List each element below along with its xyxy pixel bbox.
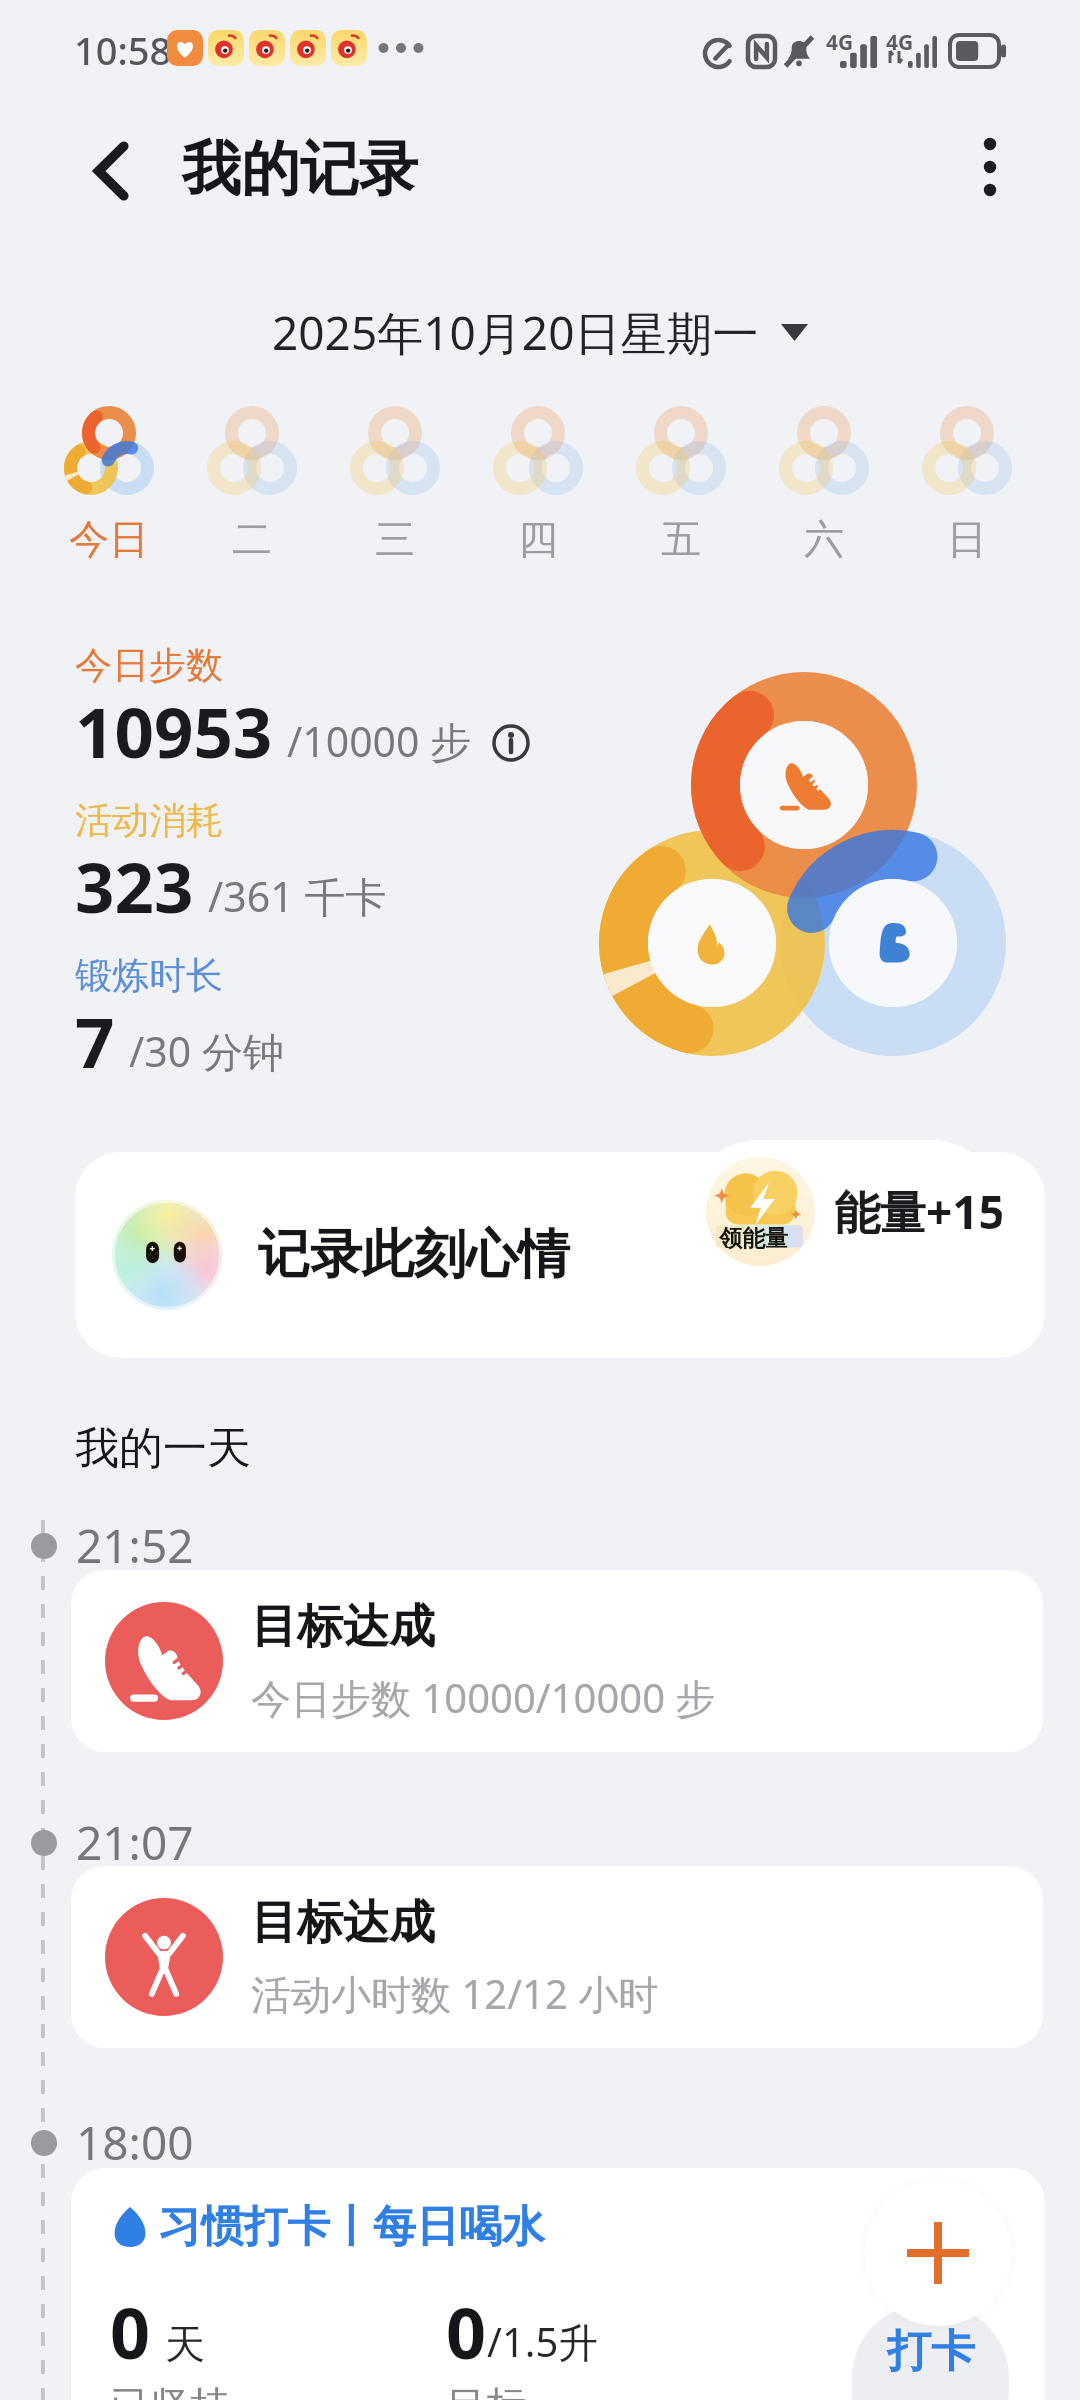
button[interactable]: More options [942,120,1038,216]
staticText: 0 [110,2284,151,2379]
staticText: 目标 [446,2381,526,2400]
staticText: 今日步数 10000/10000 步 [251,1670,716,1725]
staticText: 锻炼时长 [75,952,223,999]
button[interactable]: 打卡 [852,2304,1009,2400]
button[interactable]: Check in [865,2180,1011,2326]
staticText: 10953 [75,684,273,778]
staticText: 我的记录 [182,132,418,206]
staticText: /1.5升 [487,2314,599,2369]
staticText: 0 [446,2284,487,2379]
staticText: 目标达成 [251,1894,435,1952]
staticText: 四 [518,514,558,564]
button[interactable]: 日 [895,404,1038,564]
staticText: 10:58 [74,24,172,76]
staticText: 今日步数 [75,642,223,689]
button[interactable]: 目标达成 [71,1866,1043,2048]
button[interactable]: 二 [180,404,323,564]
staticText: 已坚持 [110,2381,230,2400]
button[interactable]: 领能量 [687,1140,1002,1282]
button[interactable]: 目标达成 [71,1570,1043,1752]
staticText: /10000 步 [287,713,472,769]
button[interactable] [71,2168,1045,2400]
button[interactable]: Info [492,724,530,762]
staticText: 六 [804,514,844,564]
staticText: 天 [165,2319,205,2369]
staticText: 18:00 [76,2111,194,2174]
button[interactable]: 五 [609,404,752,564]
button[interactable]: 今日 [37,404,180,564]
staticText: 活动消耗 [75,797,223,844]
staticText: 2025年10月20日星期一 [272,301,759,364]
staticText: 4G [826,28,854,57]
staticText: 今日 [69,514,149,564]
staticText: 记录此刻心情 [258,1222,570,1288]
staticText: 目标达成 [251,1598,435,1656]
staticText: 7 [75,994,115,1088]
staticText: 五 [661,514,701,564]
staticText: 21:07 [76,1811,194,1874]
button[interactable]: 三 [323,404,466,564]
staticText: 日 [947,514,987,564]
staticText: 我的一天 [75,1421,251,1476]
staticText: 习惯打卡丨每日喝水 [158,2200,545,2254]
button[interactable]: 记录此刻心情 [75,1152,1045,1358]
staticText: 4G [886,28,914,57]
button[interactable]: 2025年10月20日星期一 [272,301,808,364]
button[interactable]: 四 [466,404,609,564]
staticText: 打卡 [887,2324,975,2379]
staticText: 323 [75,839,194,933]
staticText: /361 千卡 [208,868,387,924]
staticText: 21:52 [76,1514,194,1577]
staticText: 能量+15 [834,1180,1002,1243]
staticText: 领能量 [719,1224,788,1253]
staticText: 活动小时数 12/12 小时 [251,1966,659,2021]
button[interactable]: 六 [752,404,895,564]
staticText: 二 [232,514,272,564]
staticText: 三 [375,514,415,564]
staticText: /30 分钟 [129,1023,284,1079]
button[interactable]: Back [62,123,158,219]
